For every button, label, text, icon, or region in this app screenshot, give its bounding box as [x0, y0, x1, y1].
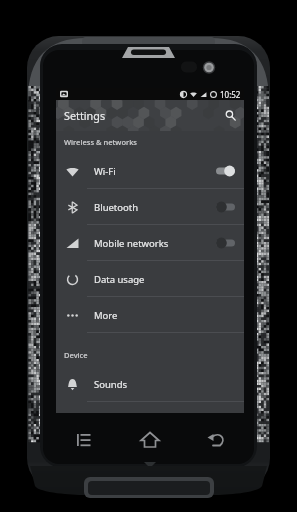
staticText: Settings — [64, 108, 106, 123]
button[interactable]: More — [56, 297, 244, 333]
staticText: Bluetooth — [94, 201, 139, 214]
staticText: Wireless & networks — [64, 137, 137, 147]
staticText: 10:52 — [220, 89, 241, 100]
button[interactable]: Mobile networks — [56, 225, 244, 261]
staticText: Data usage — [94, 273, 145, 286]
staticText: Device — [64, 350, 88, 360]
button[interactable]: Sounds — [56, 366, 244, 402]
button[interactable]: Wi-Fi — [56, 153, 244, 189]
staticText: Sounds — [94, 378, 128, 391]
button[interactable]: Data usage — [56, 261, 244, 297]
button[interactable]: Search — [216, 100, 244, 131]
staticText: Wi-Fi — [94, 165, 116, 178]
staticText: Mobile networks — [94, 237, 169, 250]
staticText: More — [94, 309, 118, 322]
button[interactable]: Bluetooth — [56, 189, 244, 225]
